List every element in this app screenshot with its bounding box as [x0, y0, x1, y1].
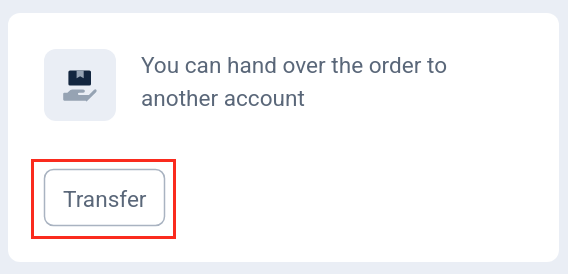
staticText: Transfer: [63, 186, 147, 212]
button[interactable]: Transfer: [43, 168, 166, 227]
staticText: You can hand over the order to another a…: [141, 52, 471, 111]
